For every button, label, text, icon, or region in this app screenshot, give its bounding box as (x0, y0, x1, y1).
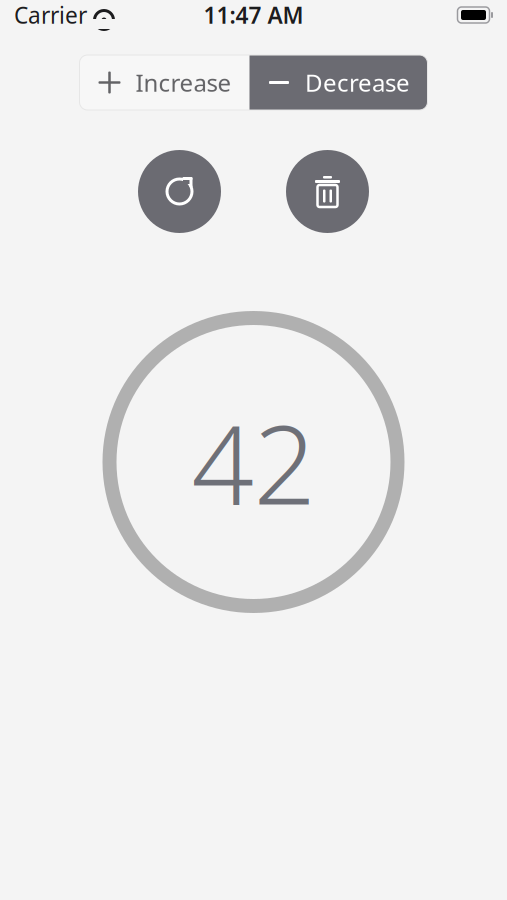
staticText: 42 (191, 389, 315, 535)
button[interactable]: Reset (138, 150, 221, 233)
button[interactable]: Decrease (249, 55, 427, 110)
button[interactable]: Increase (79, 55, 249, 110)
staticText: Carrier (14, 0, 87, 30)
staticText: 11:47 AM (203, 0, 303, 30)
staticText: Decrease (305, 67, 410, 98)
button[interactable]: Delete (286, 150, 369, 233)
staticText: Increase (135, 67, 231, 98)
